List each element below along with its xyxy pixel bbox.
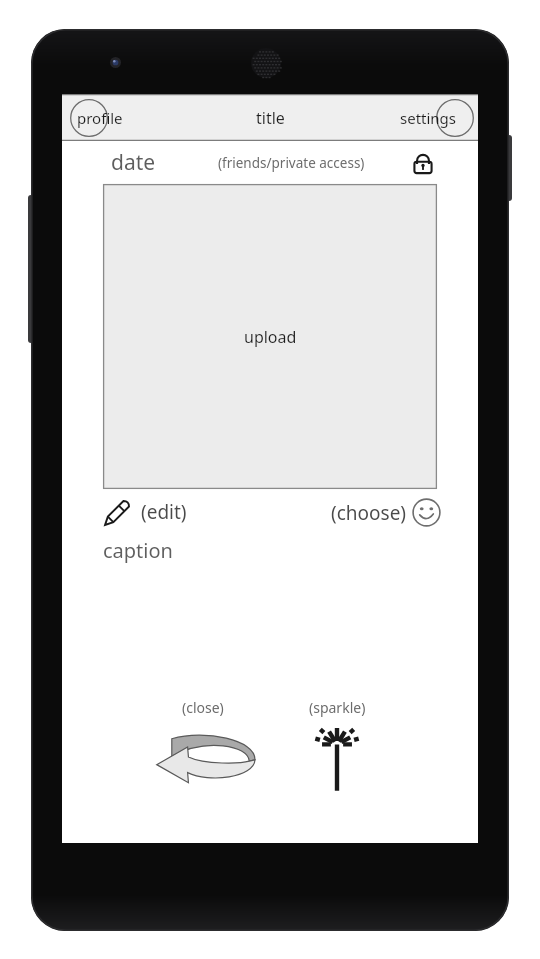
button[interactable]: upload [103,184,437,489]
button[interactable]: caption [103,537,173,564]
button[interactable]: (sparkle) [270,698,404,792]
staticText: upload [244,326,297,348]
button[interactable]: profile [66,94,150,141]
button[interactable]: date [111,148,156,177]
staticText: title [256,107,285,129]
staticText: (close) [182,698,224,717]
button[interactable]: (edit) [101,495,187,529]
staticText: (choose) [331,500,407,526]
staticText: (sparkle) [309,698,366,717]
button[interactable]: (close) [136,698,270,788]
button[interactable]: settings [380,94,478,141]
staticText: profile [77,108,123,128]
staticText: (edit) [141,499,187,525]
button[interactable]: (choose) [331,498,441,527]
button[interactable]: (friends/private access) [218,154,365,172]
button[interactable]: Privacy lock [409,149,437,177]
staticText: settings [400,108,457,128]
